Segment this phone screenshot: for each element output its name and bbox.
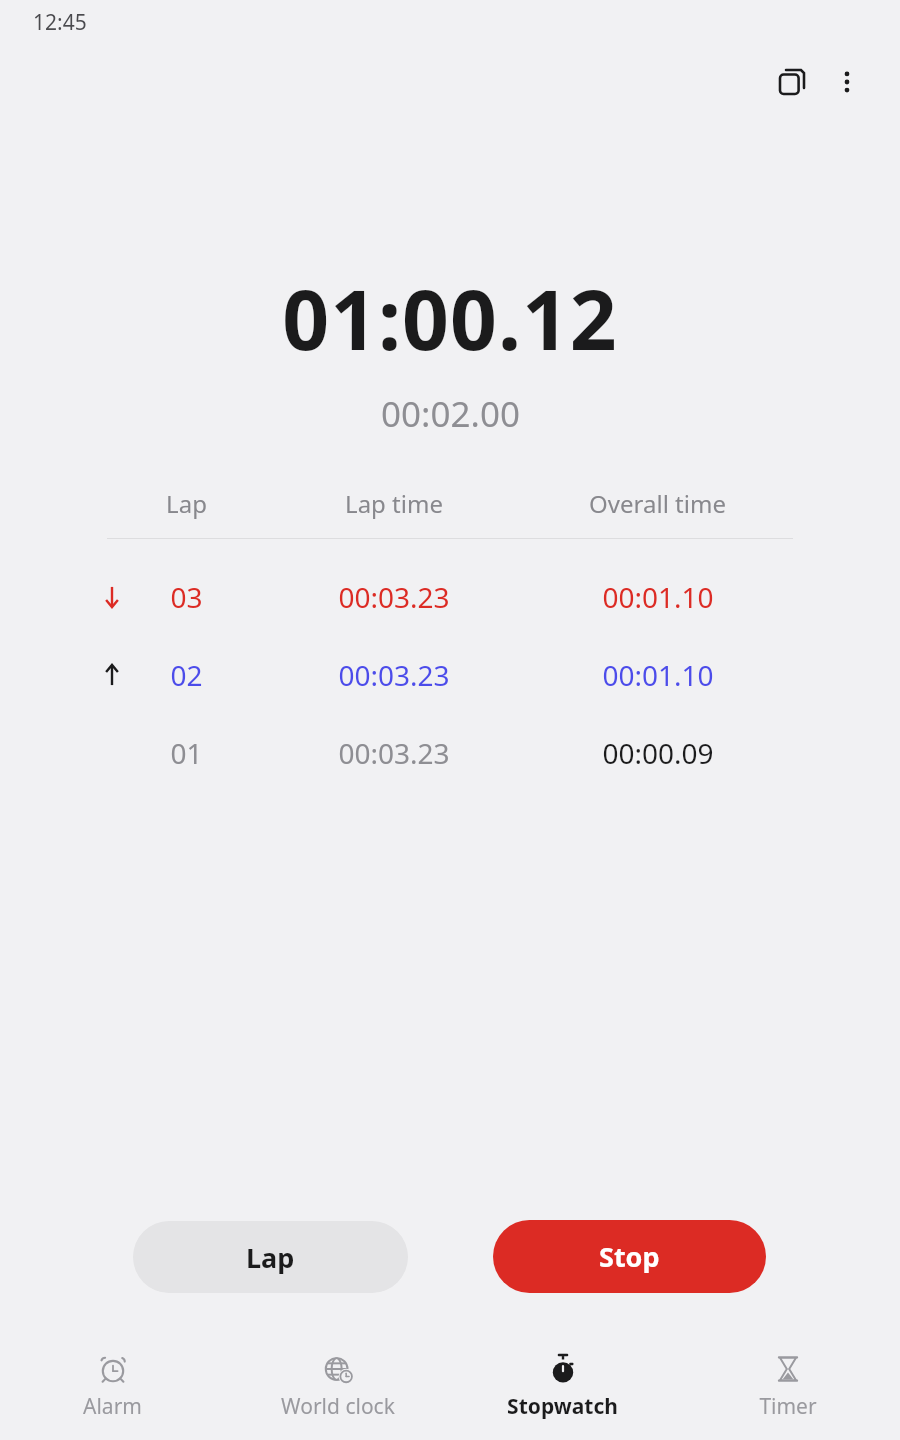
button[interactable]: Lap [133,1221,408,1293]
staticText: World clock [281,1392,395,1421]
staticText: 00:01.10 [602,578,714,616]
staticText: Timer [759,1392,817,1421]
staticText: 03 [170,578,203,616]
button[interactable]: 01 [0,714,900,792]
staticText: 01 [170,734,203,772]
button[interactable]: Stop [493,1220,766,1293]
button[interactable]: Alarm [0,1348,225,1421]
staticText: 00:03.23 [338,734,450,772]
button[interactable]: 03 [0,558,900,636]
button[interactable]: More options [821,56,873,108]
staticText: 02 [170,656,203,694]
staticText: Stop [599,1238,660,1275]
staticText: Stopwatch [507,1392,618,1421]
staticText: Lap [166,487,207,520]
staticText: 12:45 [33,8,87,37]
staticText: 00:03.23 [338,656,450,694]
staticText: Lap time [345,487,443,520]
staticText: 00:01.10 [602,656,714,694]
staticText: Alarm [83,1392,142,1421]
button[interactable]: Multi window [766,56,818,108]
button[interactable]: 02 [0,636,900,714]
staticText: 00:00.09 [602,734,714,772]
staticText: 01:00.12 [282,262,618,374]
button[interactable]: World clock [225,1348,450,1421]
staticText: 00:02.00 [381,390,520,438]
button[interactable]: Timer [675,1348,900,1421]
staticText: Lap [246,1239,295,1276]
button[interactable]: Stopwatch [450,1348,675,1421]
staticText: Overall time [589,487,726,520]
staticText: 00:03.23 [338,578,450,616]
